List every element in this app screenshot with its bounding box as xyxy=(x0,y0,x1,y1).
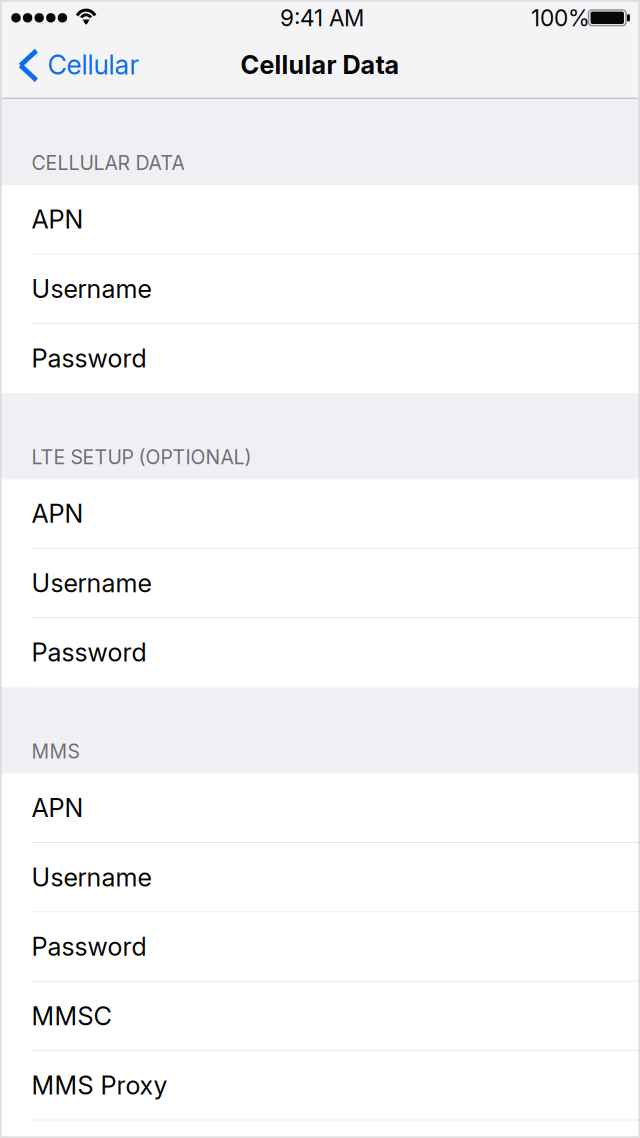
button[interactable]: APN xyxy=(0,479,640,549)
staticText: 100% xyxy=(531,4,590,32)
staticText: Password xyxy=(31,931,146,962)
staticText: MMS xyxy=(31,739,79,763)
button[interactable]: APN xyxy=(0,185,640,255)
button[interactable]: Password xyxy=(0,618,640,688)
staticText: Password xyxy=(31,637,146,668)
staticText: Username xyxy=(31,568,151,598)
staticText: Cellular Data xyxy=(240,49,399,80)
staticText: Username xyxy=(31,273,151,304)
button[interactable]: Password xyxy=(0,912,640,982)
staticText: Password xyxy=(31,343,146,374)
button[interactable]: MMS Proxy xyxy=(0,1051,640,1121)
button[interactable]: Max Message Size xyxy=(0,1121,640,1138)
staticText: LTE SETUP (OPTIONAL) xyxy=(31,445,251,469)
staticText: 9:41 AM xyxy=(280,4,364,32)
button[interactable]: MMSC xyxy=(0,982,640,1051)
staticText: CELLULAR DATA xyxy=(31,151,184,175)
staticText: APN xyxy=(31,498,83,529)
button[interactable]: Cellular xyxy=(0,40,155,97)
button[interactable]: APN xyxy=(0,774,640,843)
staticText: Cellular xyxy=(47,49,139,81)
button[interactable]: Username xyxy=(0,549,640,618)
staticText: MMSC xyxy=(31,1001,111,1031)
staticText: MMS Proxy xyxy=(31,1070,167,1101)
button[interactable]: Username xyxy=(0,255,640,324)
button[interactable]: Password xyxy=(0,324,640,393)
staticText: Username xyxy=(31,862,151,893)
staticText: APN xyxy=(31,792,83,823)
button[interactable]: Username xyxy=(0,843,640,912)
staticText: APN xyxy=(31,204,83,235)
